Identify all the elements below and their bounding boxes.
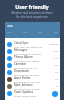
staticText: User friendly	[15, 3, 49, 10]
staticText: Sun	[55, 71, 59, 74]
button[interactable]: Calendar	[5, 62, 60, 69]
staticText: Fri	[56, 85, 59, 88]
button[interactable]: Cloud Sync	[5, 41, 60, 48]
button[interactable]: Photos Album	[5, 55, 60, 62]
staticText: Thanks for the update	[14, 87, 40, 90]
staticText: Team Updates	[14, 90, 34, 94]
staticText: 11:02	[53, 57, 59, 60]
staticText: Thu	[55, 92, 59, 95]
button[interactable]: Anna Parker	[5, 76, 60, 83]
staticText: Photos Album	[14, 55, 33, 59]
button[interactable]: Downloads	[5, 69, 60, 76]
staticText: Yesterday	[49, 43, 59, 46]
button[interactable]: Compose	[52, 91, 58, 97]
staticText: Mark Johnson	[14, 83, 33, 87]
button[interactable]: Mark Johnson	[5, 83, 60, 90]
staticText: Modern and intuitive interface for the b…	[11, 11, 53, 19]
staticText: Sat	[55, 78, 59, 81]
button[interactable]: Messages	[5, 48, 60, 55]
staticText: Sounds good, see you	[14, 80, 40, 83]
staticText: 42 new photos added	[14, 59, 40, 62]
staticText: Meeting at 3:00 PM	[14, 66, 37, 69]
staticText: Your files are backed up	[14, 45, 43, 48]
staticText: 12:30	[53, 50, 59, 53]
staticText: Anna Parker	[14, 76, 31, 80]
staticText: Sprint review notes	[14, 94, 37, 97]
staticText: Report final.pdf ready	[14, 73, 40, 76]
staticText: Messages	[14, 48, 28, 52]
staticText: Calendar	[14, 62, 27, 66]
button[interactable]: Team Updates	[5, 90, 60, 97]
staticText: Cloud Sync	[14, 41, 29, 45]
staticText: Mon	[54, 64, 59, 67]
staticText: Downloads	[14, 69, 29, 73]
staticText: New message received	[14, 52, 41, 55]
